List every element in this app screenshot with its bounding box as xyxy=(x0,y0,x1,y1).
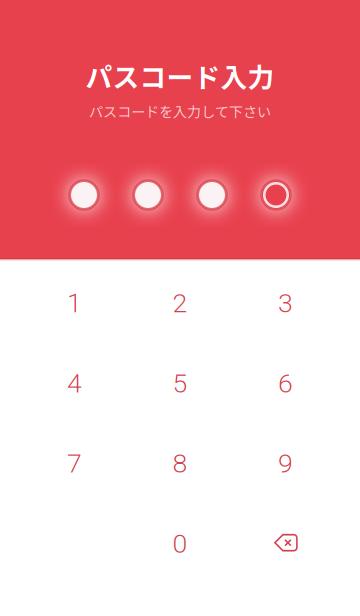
button[interactable]: 0 xyxy=(127,504,233,584)
staticText: 3 xyxy=(278,287,293,319)
staticText: 5 xyxy=(172,368,187,399)
button[interactable]: 1 xyxy=(22,263,127,343)
button[interactable]: 4 xyxy=(22,343,127,423)
staticText: 0 xyxy=(172,528,187,559)
staticText: 8 xyxy=(172,448,187,479)
staticText: 4 xyxy=(67,368,82,399)
staticText: 1 xyxy=(67,287,82,319)
button[interactable]: 6 xyxy=(233,343,338,423)
staticText: パスコード入力 xyxy=(85,56,274,95)
staticText: パスコードを入力して下さい xyxy=(89,101,271,121)
staticText: 2 xyxy=(172,287,187,319)
button[interactable]: 5 xyxy=(127,343,233,423)
button[interactable]: Delete xyxy=(233,504,338,584)
button[interactable]: 2 xyxy=(127,263,233,343)
button[interactable]: 9 xyxy=(233,423,338,504)
staticText: 9 xyxy=(278,448,293,479)
button[interactable]: 7 xyxy=(22,423,127,504)
button[interactable]: 3 xyxy=(233,263,338,343)
staticText: 7 xyxy=(67,448,82,479)
staticText: 6 xyxy=(278,368,293,399)
button[interactable]: 8 xyxy=(127,423,233,504)
